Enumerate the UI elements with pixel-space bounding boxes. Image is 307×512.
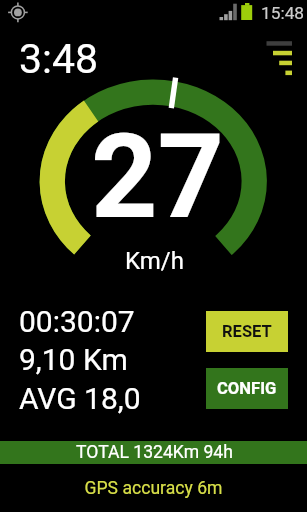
staticText: 3:48 [19,35,99,83]
staticText: GPS accuracy 6m [0,478,307,499]
staticText: 00:30:07 [19,304,135,339]
staticText: CONFIG [217,379,277,398]
button[interactable]: RESET [206,311,288,352]
button[interactable]: TOTAL 1324Km 94h [0,441,307,464]
button[interactable]: CONFIG [206,368,288,409]
staticText: TOTAL 1324Km 94h [76,442,233,463]
staticText: 27 [4,109,307,245]
staticText: 15:48 [261,3,305,23]
staticText: RESET [222,322,272,341]
staticText: Km/h [1,247,307,275]
staticText: AVG 18,0 [19,381,141,416]
staticText: 9,10 Km [19,342,128,377]
button[interactable]: Statistics [260,34,300,80]
